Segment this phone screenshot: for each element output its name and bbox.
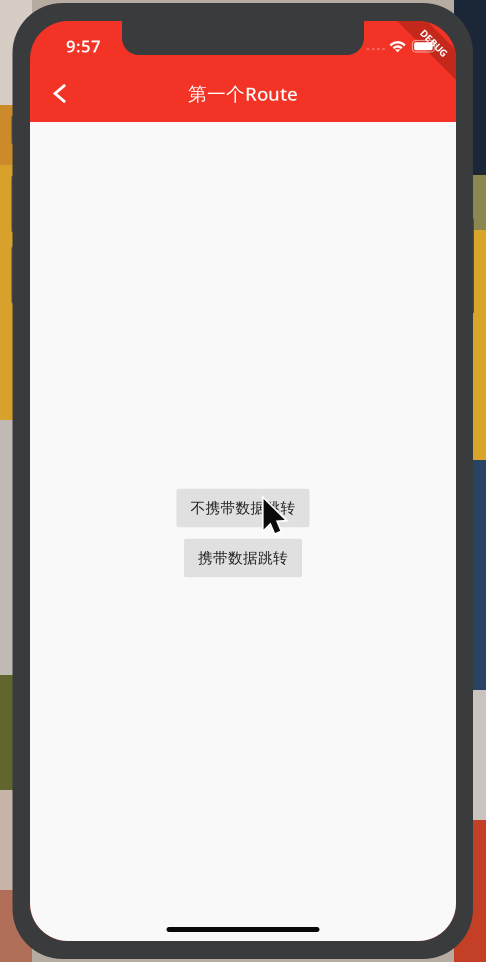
staticText: 第一个Route [188,81,298,106]
staticText: 9:57 [66,35,101,57]
button[interactable]: Back [39,70,81,116]
staticText: DEBUG [417,36,451,50]
staticText: 不携带数据跳转 [190,499,295,517]
button[interactable]: 不携带数据跳转 [176,489,309,527]
staticText: 携带数据跳转 [198,549,288,567]
button[interactable]: 携带数据跳转 [184,539,302,577]
